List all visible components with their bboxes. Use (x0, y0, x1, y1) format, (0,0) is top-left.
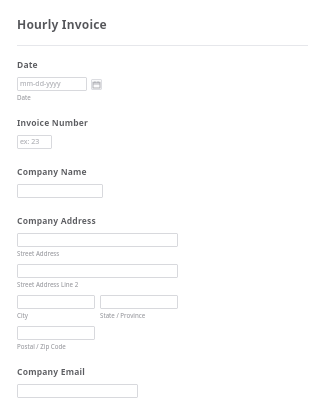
staticText: Hourly Invoice (17, 16, 107, 32)
staticText: Postal / Zip Code (17, 342, 66, 350)
staticText: Company Email (17, 366, 85, 378)
staticText: Date (17, 93, 31, 101)
button[interactable]: ex: 23 (17, 135, 52, 149)
staticText: Date (17, 59, 38, 71)
button[interactable]: mm-dd-yyyy (17, 77, 87, 91)
button[interactable] (17, 264, 178, 278)
staticText: Invoice Number (17, 117, 88, 129)
button[interactable] (100, 295, 178, 309)
staticText: mm-dd-yyyy (20, 79, 61, 89)
button[interactable]: Open calendar picker (91, 79, 102, 90)
button[interactable] (17, 233, 178, 247)
button[interactable] (17, 326, 95, 340)
staticText: Street Address (17, 249, 60, 257)
button[interactable] (17, 384, 138, 398)
button[interactable] (17, 295, 95, 309)
staticText: ex: 23 (20, 137, 40, 147)
staticText: Company Name (17, 166, 87, 178)
button[interactable] (17, 184, 103, 198)
staticText: Company Address (17, 215, 96, 227)
staticText: Street Address Line 2 (17, 280, 79, 288)
staticText: City (17, 311, 28, 319)
staticText: State / Province (100, 311, 146, 319)
